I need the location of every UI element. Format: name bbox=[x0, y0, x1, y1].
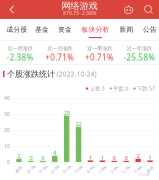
staticText: 1~3% bbox=[98, 167, 107, 172]
button[interactable]: Search bbox=[139, 0, 158, 19]
staticText: 0 bbox=[125, 154, 128, 162]
staticText: 0 bbox=[113, 154, 116, 162]
staticText: 2 bbox=[137, 152, 140, 160]
button[interactable]: 近一年涨跌 bbox=[119, 41, 159, 65]
staticText: 跌停 bbox=[15, 167, 23, 172]
button[interactable]: 新闻 bbox=[111, 19, 141, 40]
staticText: 30 bbox=[4, 110, 10, 118]
staticText: 0~1% bbox=[86, 167, 95, 172]
staticText: 同花顺 bbox=[138, 172, 150, 177]
staticText: 近一月涨跌 bbox=[47, 45, 72, 52]
button[interactable]: AI assistant bbox=[119, 0, 138, 19]
staticText: -2.38% bbox=[6, 52, 33, 63]
staticText: 1 bbox=[89, 154, 92, 161]
staticText: 个股涨跌统计 bbox=[7, 69, 55, 79]
staticText: 10 bbox=[4, 142, 10, 150]
staticText: -5~-3% bbox=[49, 167, 60, 172]
staticText: +0.71% bbox=[45, 52, 74, 63]
staticText: 40 bbox=[4, 94, 10, 102]
staticText: 0 bbox=[7, 158, 10, 166]
staticText: -25.58% bbox=[123, 52, 155, 63]
staticText: +0.71% bbox=[85, 52, 114, 63]
staticText: 下跌: 57 bbox=[137, 85, 155, 92]
button[interactable]: 板块分析 bbox=[75, 19, 115, 40]
staticText: 涨停 bbox=[146, 167, 154, 172]
staticText: 公告 bbox=[143, 25, 157, 34]
staticText: 2 bbox=[17, 152, 20, 160]
staticText: -3~-1% bbox=[61, 167, 72, 172]
button[interactable]: Back bbox=[2, 0, 22, 19]
staticText: 1 bbox=[101, 154, 104, 161]
staticText: -1~0% bbox=[73, 167, 83, 172]
staticText: 资金 bbox=[58, 25, 72, 34]
staticText: -7~-5% bbox=[37, 167, 48, 172]
staticText: (2022-10-24) bbox=[56, 70, 96, 78]
staticText: 20 bbox=[4, 126, 10, 134]
staticText: 近一年涨跌 bbox=[127, 45, 152, 52]
button[interactable]: 基金 bbox=[28, 19, 56, 40]
staticText: -9~-7% bbox=[25, 167, 36, 172]
staticText: 3~5% bbox=[110, 167, 119, 172]
staticText: 新闻 bbox=[119, 25, 133, 34]
staticText: 上涨: 3 bbox=[90, 85, 105, 92]
staticText: 平盘: 0 bbox=[113, 85, 128, 92]
staticText: 成分股 bbox=[6, 25, 27, 34]
staticText: 7~9% bbox=[134, 167, 143, 172]
staticText: 22 bbox=[75, 120, 81, 128]
staticText: 29 bbox=[64, 109, 70, 116]
button[interactable]: 公告 bbox=[135, 19, 159, 40]
staticText: 板块分析 bbox=[81, 25, 109, 34]
button[interactable]: 近一月涨跌 bbox=[40, 41, 80, 65]
button[interactable]: 资金 bbox=[51, 19, 79, 40]
staticText: 4 bbox=[53, 149, 56, 156]
staticText: 近一季涨跌 bbox=[87, 45, 112, 52]
staticText: 基金 bbox=[35, 25, 49, 34]
button[interactable]: 近一周涨跌 bbox=[0, 41, 40, 65]
staticText: 网络游戏 bbox=[61, 0, 97, 12]
button[interactable]: 成分股 bbox=[0, 19, 34, 40]
button[interactable]: 近一季涨跌 bbox=[79, 41, 119, 65]
staticText: 近一周涨跌 bbox=[7, 45, 32, 52]
staticText: 5~7% bbox=[122, 167, 131, 172]
staticText: 1 bbox=[148, 154, 151, 161]
staticText: 876.73 -2.38% bbox=[63, 9, 96, 17]
staticText: 0 bbox=[29, 154, 32, 162]
staticText: 0 bbox=[41, 154, 44, 162]
